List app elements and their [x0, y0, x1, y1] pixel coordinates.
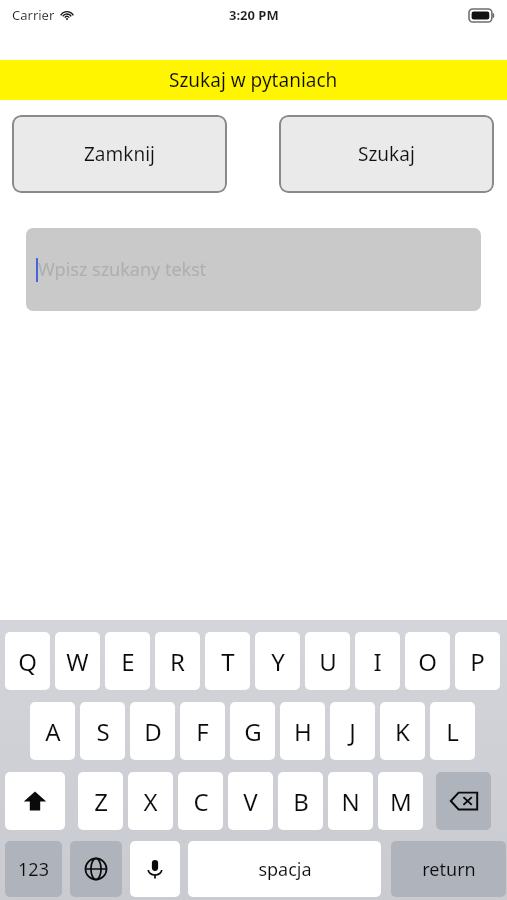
button[interactable]: S — [80, 702, 125, 760]
staticText: E — [121, 645, 135, 678]
button[interactable]: C — [178, 772, 223, 830]
staticText: J — [349, 715, 356, 748]
button[interactable]: O — [405, 632, 450, 690]
staticText: Wpisz szukany tekst — [38, 257, 207, 282]
staticText: A — [45, 715, 61, 748]
staticText: Q — [18, 645, 37, 678]
staticText: I — [373, 645, 382, 678]
button[interactable]: K — [380, 702, 425, 760]
button[interactable]: M — [378, 772, 423, 830]
staticText: W — [66, 645, 89, 678]
button[interactable]: Wpisz szukany tekst — [26, 228, 481, 311]
button[interactable]: B — [278, 772, 323, 830]
staticText: 3:20 PM — [229, 6, 279, 24]
staticText: H — [294, 715, 312, 748]
staticText: Zamknij — [84, 141, 155, 167]
staticText: Szukaj — [358, 141, 415, 167]
button[interactable]: T — [205, 632, 250, 690]
staticText: M — [390, 785, 412, 818]
button[interactable]: spacja — [188, 841, 381, 897]
button[interactable]: Shift — [5, 772, 65, 830]
staticText: O — [418, 645, 437, 678]
staticText: G — [244, 715, 262, 748]
button[interactable]: R — [155, 632, 200, 690]
button[interactable]: E — [105, 632, 150, 690]
button[interactable]: I — [355, 632, 400, 690]
button[interactable]: Szukaj — [279, 115, 494, 193]
button[interactable]: F — [180, 702, 225, 760]
staticText: K — [395, 715, 410, 748]
staticText: spacja — [258, 857, 312, 882]
staticText: V — [243, 785, 258, 818]
button[interactable]: V — [228, 772, 273, 830]
button[interactable]: W — [55, 632, 100, 690]
button[interactable]: Change keyboard — [70, 841, 122, 897]
button[interactable]: P — [455, 632, 500, 690]
button[interactable]: D — [130, 702, 175, 760]
button[interactable]: Z — [78, 772, 123, 830]
staticText: U — [319, 645, 337, 678]
staticText: return — [422, 857, 476, 882]
button[interactable]: L — [430, 702, 475, 760]
staticText: N — [341, 785, 360, 818]
button[interactable]: Q — [5, 632, 50, 690]
staticText: C — [193, 785, 209, 818]
staticText: X — [143, 785, 158, 818]
staticText: B — [293, 785, 309, 818]
staticText: T — [221, 645, 235, 678]
staticText: R — [170, 645, 185, 678]
button[interactable]: X — [128, 772, 173, 830]
button[interactable]: Y — [255, 632, 300, 690]
staticText: Carrier — [12, 6, 55, 24]
staticText: Y — [271, 645, 285, 678]
staticText: F — [196, 715, 209, 748]
button[interactable]: N — [328, 772, 373, 830]
button[interactable]: G — [230, 702, 275, 760]
staticText: P — [470, 645, 485, 678]
staticText: Z — [94, 785, 108, 818]
staticText: Szukaj w pytaniach — [169, 67, 338, 93]
button[interactable]: A — [30, 702, 75, 760]
button[interactable]: J — [330, 702, 375, 760]
staticText: 123 — [18, 857, 49, 882]
button[interactable]: H — [280, 702, 325, 760]
button[interactable]: U — [305, 632, 350, 690]
button[interactable]: 123 — [5, 841, 62, 897]
button[interactable]: Zamknij — [12, 115, 227, 193]
staticText: D — [144, 715, 162, 748]
button[interactable]: return — [391, 841, 506, 897]
button[interactable]: Backspace — [436, 772, 491, 830]
button[interactable]: Dictate — [130, 841, 180, 897]
staticText: L — [446, 715, 459, 748]
staticText: S — [96, 715, 110, 748]
